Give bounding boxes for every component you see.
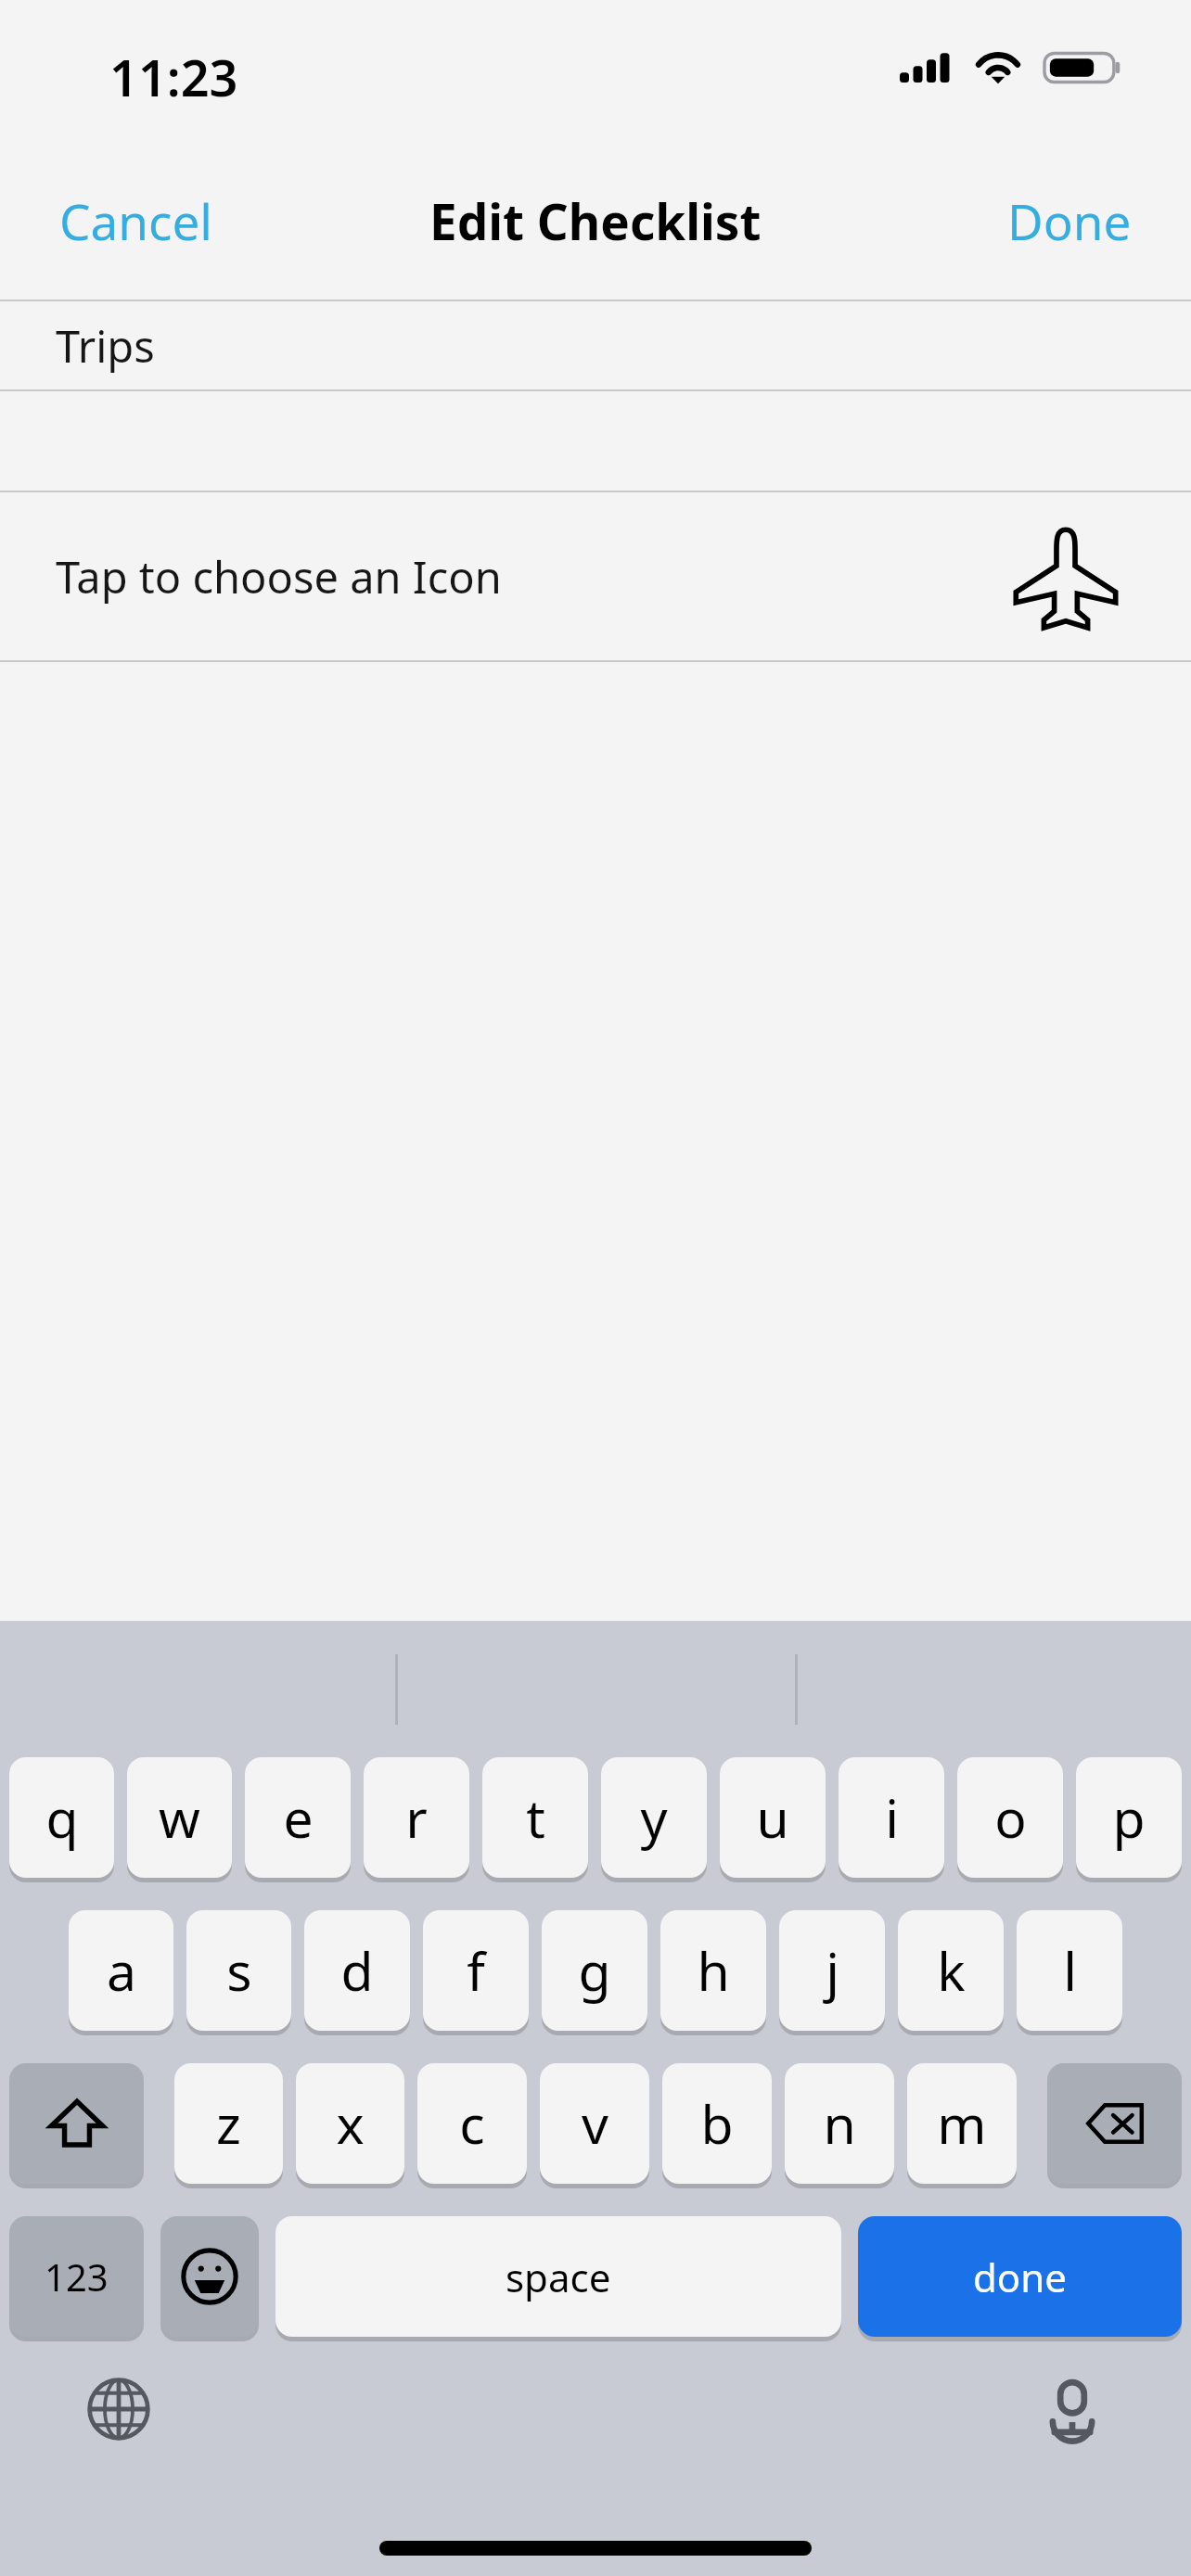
button[interactable]: h — [660, 1910, 766, 2031]
button[interactable]: y — [601, 1757, 707, 1878]
button[interactable]: f — [423, 1910, 529, 2031]
staticText: w — [159, 1781, 200, 1854]
staticText: n — [823, 2087, 856, 2160]
button[interactable]: u — [720, 1757, 826, 1878]
button[interactable]: l — [1017, 1910, 1122, 2031]
staticText: k — [937, 1934, 966, 2007]
button[interactable]: j — [779, 1910, 885, 2031]
staticText: v — [582, 2087, 608, 2160]
staticText: d — [340, 1934, 374, 2007]
staticText: done — [973, 2251, 1067, 2303]
staticText: s — [226, 1934, 252, 2007]
staticText: Done — [1007, 187, 1132, 254]
button[interactable]: 123 — [9, 2216, 144, 2337]
staticText: m — [937, 2087, 987, 2160]
staticText: h — [697, 1934, 730, 2007]
button[interactable]: m — [907, 2063, 1017, 2184]
staticText: j — [826, 1934, 839, 2007]
button[interactable]: Backspace — [1047, 2063, 1182, 2184]
button[interactable]: Shift — [9, 2063, 144, 2184]
button[interactable]: Change keyboard language — [72, 2363, 165, 2455]
staticText: r — [405, 1781, 428, 1854]
staticText: Tap to choose an Icon — [56, 547, 502, 606]
staticText: Cancel — [59, 187, 212, 254]
staticText: i — [885, 1781, 899, 1854]
button[interactable]: s — [186, 1910, 291, 2031]
button[interactable]: Emoji — [160, 2216, 259, 2337]
button[interactable]: r — [364, 1757, 469, 1878]
staticText: g — [578, 1934, 611, 2007]
button[interactable]: Dictation — [1026, 2363, 1119, 2455]
staticText: p — [1112, 1781, 1146, 1854]
button[interactable]: n — [785, 2063, 894, 2184]
button[interactable]: d — [304, 1910, 410, 2031]
staticText: l — [1063, 1934, 1077, 2007]
button[interactable]: o — [957, 1757, 1063, 1878]
staticText: 11:23 — [109, 43, 238, 111]
button[interactable]: Done — [983, 171, 1156, 271]
button[interactable]: q — [9, 1757, 114, 1878]
staticText: b — [700, 2087, 734, 2160]
staticText: space — [506, 2251, 611, 2303]
other: Airplane icon — [1011, 522, 1121, 631]
staticText: f — [467, 1934, 485, 2007]
staticText: x — [336, 2087, 365, 2160]
button[interactable]: Tap to choose an Icon — [0, 492, 1191, 660]
button[interactable] — [0, 391, 1191, 491]
button[interactable]: a — [69, 1910, 173, 2031]
button[interactable]: k — [898, 1910, 1004, 2031]
staticText: c — [459, 2087, 485, 2160]
button[interactable]: z — [174, 2063, 283, 2184]
button[interactable]: c — [417, 2063, 527, 2184]
button[interactable]: e — [245, 1757, 351, 1878]
button[interactable]: space — [275, 2216, 841, 2337]
button[interactable]: i — [839, 1757, 944, 1878]
button[interactable]: t — [482, 1757, 588, 1878]
staticText: q — [45, 1781, 79, 1854]
button[interactable]: Trips — [0, 301, 1191, 389]
staticText: u — [756, 1781, 789, 1854]
staticText: y — [640, 1781, 668, 1854]
staticText: e — [283, 1781, 314, 1854]
button[interactable]: b — [662, 2063, 772, 2184]
staticText: o — [994, 1781, 1027, 1854]
button[interactable]: x — [296, 2063, 404, 2184]
button[interactable]: Cancel — [35, 171, 237, 271]
button[interactable]: w — [127, 1757, 232, 1878]
staticText: 123 — [45, 2251, 109, 2302]
button[interactable]: done — [858, 2216, 1182, 2337]
button[interactable]: p — [1076, 1757, 1182, 1878]
staticText: Edit Checklist — [429, 187, 762, 254]
staticText: t — [526, 1781, 545, 1854]
button[interactable]: g — [542, 1910, 647, 2031]
staticText: z — [216, 2087, 241, 2160]
button[interactable]: v — [540, 2063, 649, 2184]
staticText: a — [107, 1934, 136, 2007]
staticText: Trips — [56, 316, 155, 376]
